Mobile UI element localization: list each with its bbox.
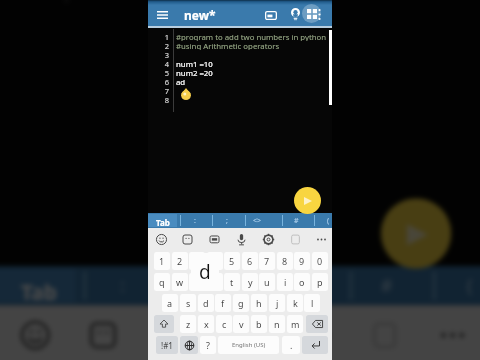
button[interactable]: q: [154, 273, 170, 291]
staticText: f: [221, 297, 225, 309]
button[interactable]: d: [198, 294, 214, 312]
button[interactable]: Emoji: [10, 310, 57, 357]
button[interactable]: y: [242, 273, 258, 291]
button[interactable]: r: [207, 273, 223, 291]
button[interactable]: More: [312, 230, 330, 248]
button[interactable]: e: [189, 273, 205, 291]
button[interactable]: Emoji: [152, 230, 170, 248]
button[interactable]: Voice input: [219, 310, 266, 357]
staticText: 3: [148, 50, 169, 59]
button[interactable]: <>: [248, 213, 266, 228]
staticText: 2: [148, 41, 169, 50]
staticText: 6: [247, 255, 253, 267]
button[interactable]: :: [99, 266, 146, 305]
button[interactable]: Backspace: [306, 315, 328, 333]
button[interactable]: 8: [277, 252, 293, 270]
button[interactable]: Stickers: [178, 230, 196, 248]
staticText: #program to add two numbers in python: [176, 32, 327, 41]
button[interactable]: GIF: [205, 230, 223, 248]
button[interactable]: ;: [183, 266, 230, 305]
button[interactable]: g: [233, 294, 249, 312]
staticText: c: [222, 318, 227, 330]
staticText: 1: [159, 255, 165, 267]
staticText: 7: [148, 86, 169, 95]
button[interactable]: 9: [294, 252, 310, 270]
button[interactable]: l: [304, 294, 320, 312]
button[interactable]: Settings: [290, 310, 337, 357]
button[interactable]: n: [269, 315, 285, 333]
button[interactable]: Clipboard: [286, 230, 304, 248]
button[interactable]: c: [216, 315, 232, 333]
button[interactable]: p: [312, 273, 328, 291]
button[interactable]: English (US): [218, 336, 279, 354]
button[interactable]: !#1: [156, 336, 178, 354]
button[interactable]: More options: [314, 4, 325, 25]
button[interactable]: 3: [189, 252, 205, 270]
button[interactable]: Voice input: [232, 230, 250, 248]
button[interactable]: Open file: [261, 5, 281, 25]
button[interactable]: .: [282, 336, 300, 354]
button[interactable]: (: [446, 266, 480, 305]
button[interactable]: f: [215, 294, 231, 312]
button[interactable]: Enter: [302, 336, 328, 354]
button[interactable]: v: [233, 315, 249, 333]
button[interactable]: w: [172, 273, 188, 291]
button[interactable]: u: [259, 273, 275, 291]
button[interactable]: x: [198, 315, 214, 333]
staticText: v: [239, 318, 244, 330]
staticText: num1 =10: [176, 59, 213, 68]
button[interactable]: Settings: [259, 230, 277, 248]
button[interactable]: Stickers: [78, 310, 125, 357]
staticText: w: [176, 276, 184, 288]
button[interactable]: 5: [224, 252, 240, 270]
button[interactable]: m: [287, 315, 303, 333]
staticText: j: [276, 297, 279, 309]
staticText: b: [256, 318, 262, 330]
button[interactable]: <>: [261, 266, 308, 305]
staticText: :: [194, 216, 196, 226]
button[interactable]: k: [287, 294, 303, 312]
button[interactable]: Shift: [154, 315, 174, 333]
staticText: (: [327, 216, 330, 226]
button[interactable]: Hints: [285, 4, 305, 24]
button[interactable]: 0: [312, 252, 328, 270]
button[interactable]: Run: [294, 187, 321, 214]
button[interactable]: j: [269, 294, 285, 312]
staticText: 9: [299, 255, 305, 267]
button[interactable]: Navigation menu: [152, 5, 172, 25]
button[interactable]: 6: [242, 252, 258, 270]
button[interactable]: s: [180, 294, 196, 312]
button[interactable]: Tab: [148, 214, 177, 227]
button[interactable]: #: [363, 266, 410, 305]
button[interactable]: h: [251, 294, 267, 312]
button[interactable]: 2: [172, 252, 188, 270]
button[interactable]: 1: [154, 252, 170, 270]
button[interactable]: o: [294, 273, 310, 291]
button[interactable]: Tab: [0, 269, 76, 303]
button[interactable]: i: [277, 273, 293, 291]
staticText: 0: [317, 255, 323, 267]
staticText: h: [256, 297, 262, 309]
button[interactable]: ;: [218, 213, 236, 228]
staticText: 1: [148, 32, 169, 41]
button[interactable]: Change language: [180, 336, 198, 354]
button[interactable]: :: [186, 213, 204, 228]
button[interactable]: 7: [259, 252, 275, 270]
button[interactable]: t: [224, 273, 240, 291]
button[interactable]: #: [287, 213, 305, 228]
button[interactable]: Run: [381, 198, 451, 269]
staticText: 8: [148, 95, 169, 104]
button[interactable]: z: [180, 315, 196, 333]
button[interactable]: b: [251, 315, 267, 333]
button[interactable]: GIF: [149, 310, 196, 357]
button[interactable]: 4: [207, 252, 223, 270]
button[interactable]: (: [319, 213, 337, 228]
staticText: g: [238, 297, 244, 309]
button[interactable]: ?: [200, 336, 216, 354]
button[interactable]: Keyboard tools: [302, 4, 321, 23]
button[interactable]: a: [162, 294, 178, 312]
